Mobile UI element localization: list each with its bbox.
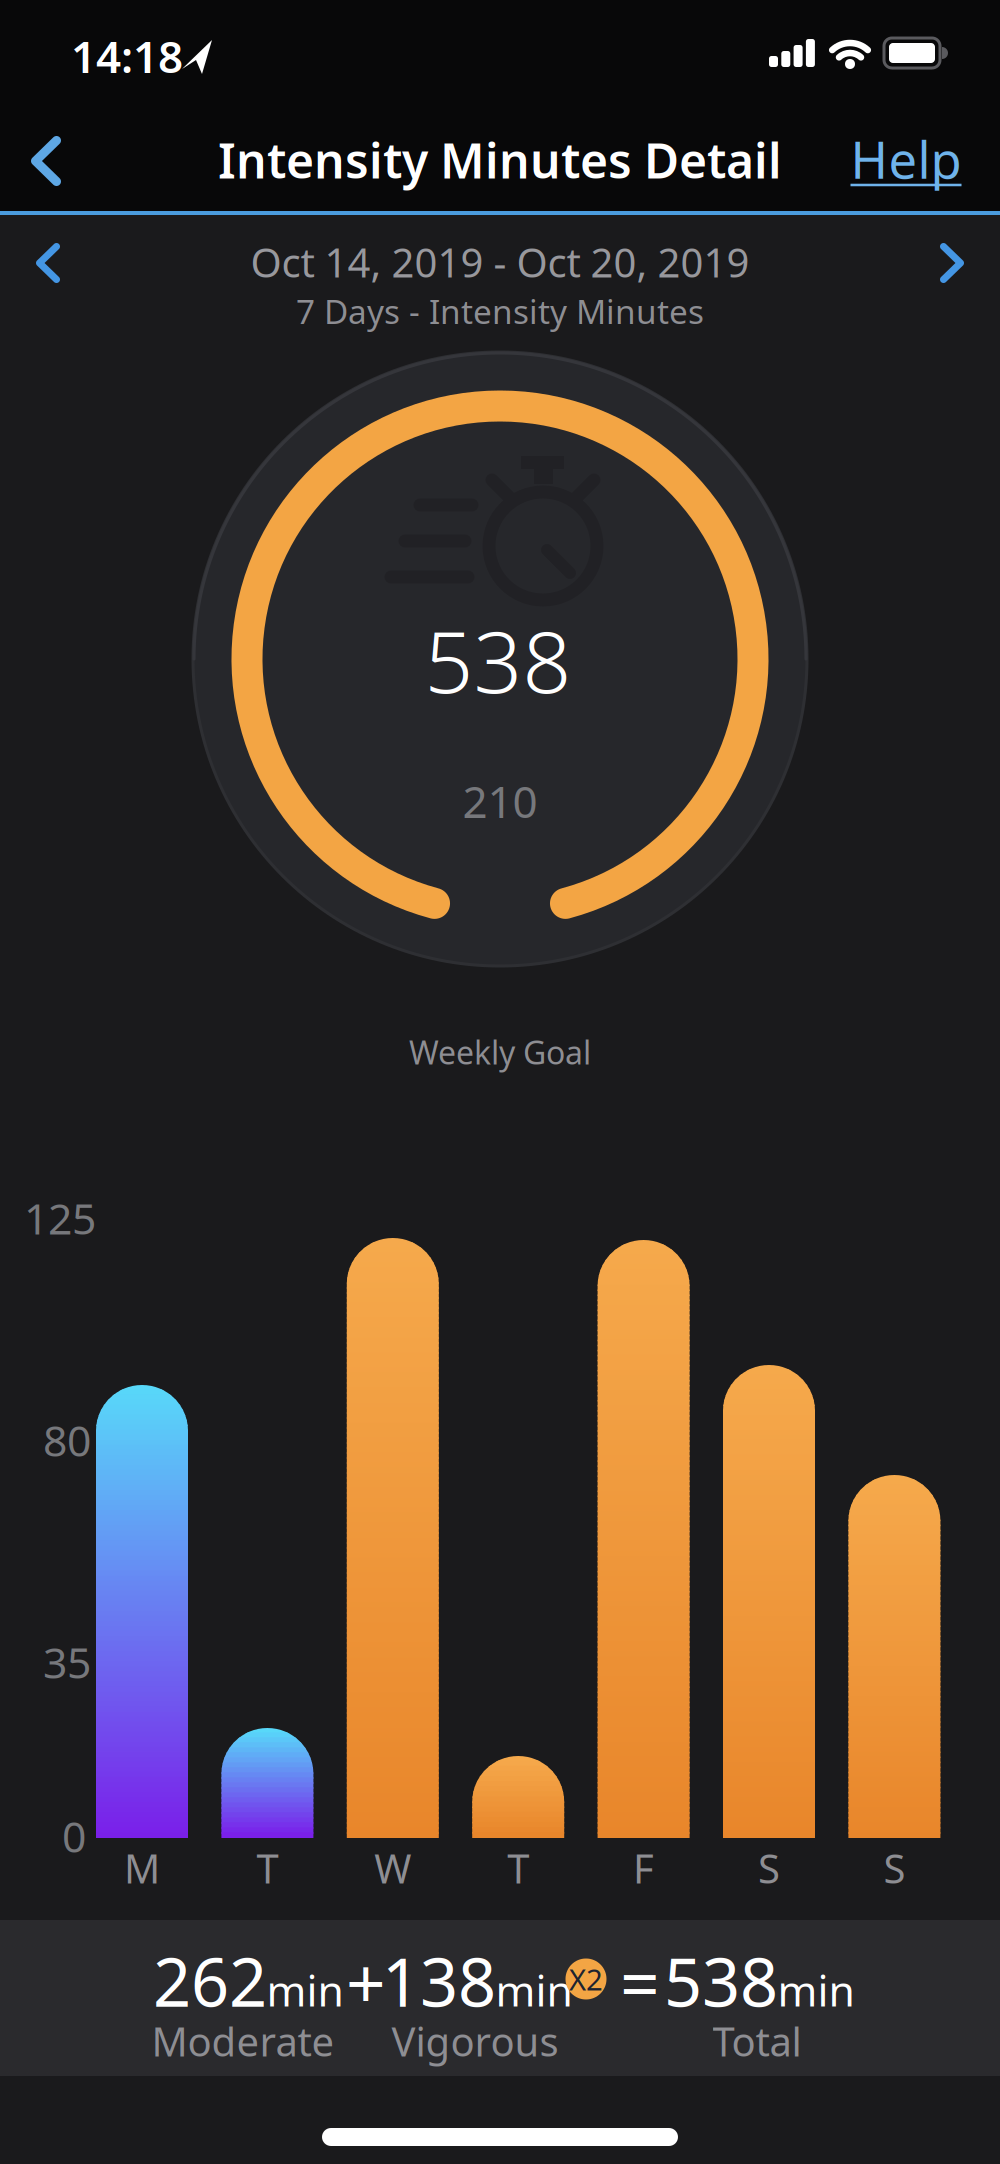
staticText: S [883,1841,905,1894]
staticText: Vigorous [391,2014,558,2067]
staticText: Oct 14, 2019 - Oct 20, 2019 [250,235,749,288]
staticText: W [374,1841,411,1894]
staticText: Total [712,2014,801,2067]
staticText: M [124,1841,160,1894]
staticText: 538 [664,1937,778,2025]
staticText: 262 [153,1937,267,2025]
staticText: = [620,1936,660,2028]
staticText: + [346,1936,386,2028]
staticText: Intensity Minutes Detail [218,128,782,192]
staticText: 125 [24,1190,96,1246]
staticText: F [633,1841,654,1894]
staticText: T [256,1841,278,1894]
button[interactable]: Back [17,122,75,200]
button[interactable]: Next week [928,231,976,295]
button[interactable]: Help [850,125,961,193]
staticText: X2 [569,1959,603,1998]
staticText: Help [850,125,961,193]
staticText: Weekly Goal [409,1031,591,1073]
staticText: 538 [424,603,571,717]
staticText: 80 [43,1412,91,1468]
staticText: min [495,1962,572,2018]
staticText: S [758,1841,780,1894]
staticText: min [777,1962,854,2018]
staticText: 0 [62,1808,86,1864]
staticText: min [266,1962,343,2018]
staticText: 7 Days - Intensity Minutes [296,289,704,333]
button[interactable]: Previous week [24,231,72,295]
staticText: 210 [462,772,537,830]
staticText: 14:18 [71,27,183,85]
staticText: T [507,1841,529,1894]
staticText: 35 [43,1634,91,1690]
staticText: 138 [382,1937,496,2025]
staticText: Moderate [151,2014,334,2067]
